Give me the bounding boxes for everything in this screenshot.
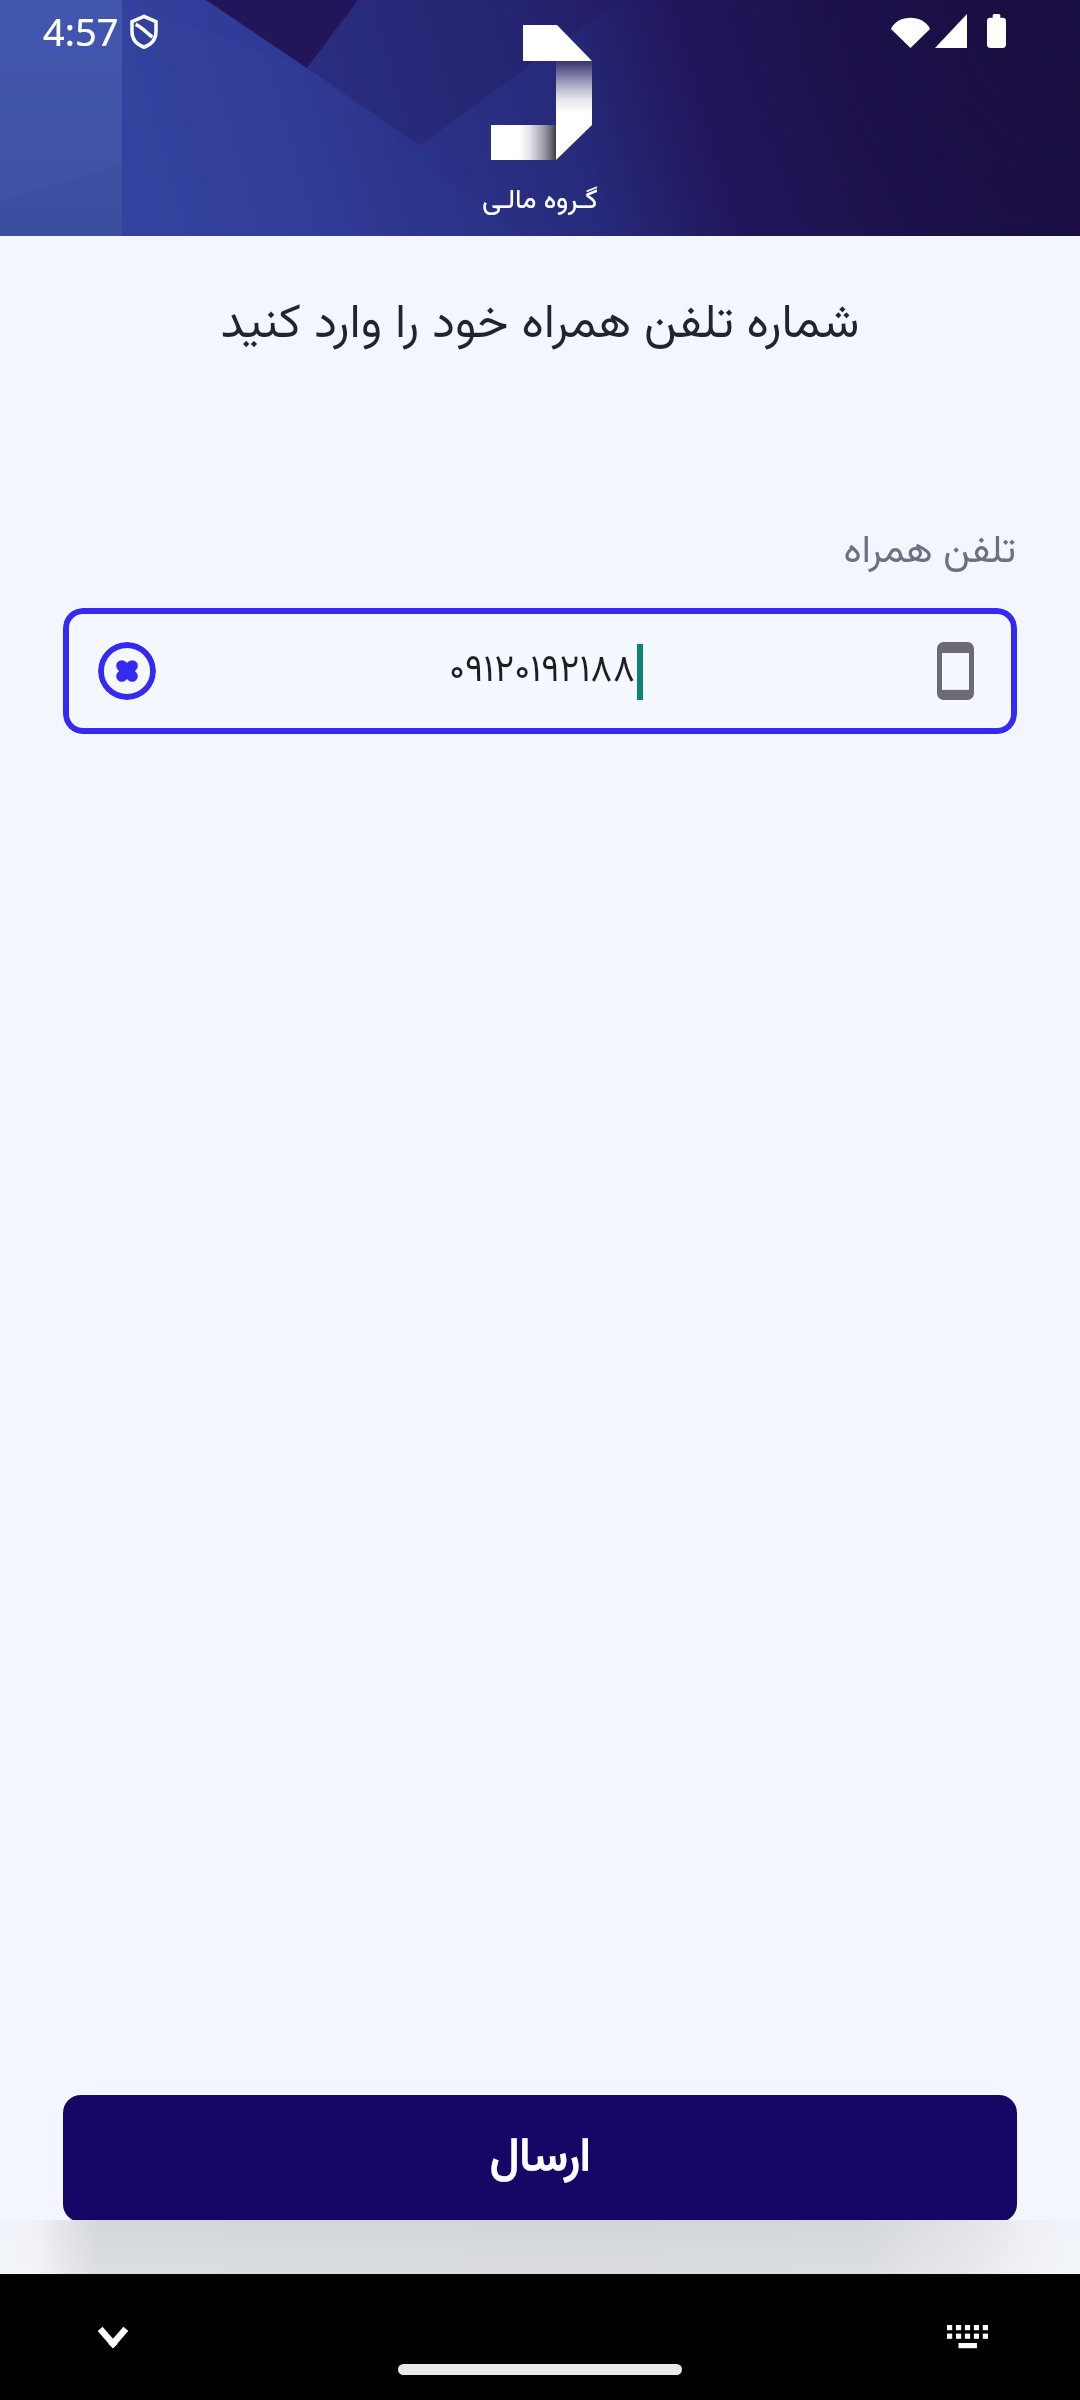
button[interactable]: ارسال xyxy=(63,2095,1017,2222)
other: Phone xyxy=(937,642,974,700)
staticText: 4:57 xyxy=(43,5,119,57)
staticText: ارسال xyxy=(490,2123,591,2195)
button[interactable]: Hide keyboard xyxy=(81,2305,145,2369)
staticText: ۰۹۱۲۰۱۹۲۱۸۸ xyxy=(449,642,636,701)
staticText: شماره تلفن همراه خود را وارد کنید xyxy=(0,288,1080,363)
button[interactable]: Clear xyxy=(63,608,1017,734)
staticText: تلفن همراه xyxy=(0,522,1016,583)
button[interactable]: Switch keyboard xyxy=(935,2305,999,2369)
button[interactable]: Clear xyxy=(98,642,156,700)
staticText: گـروه مالـی xyxy=(0,180,1080,222)
